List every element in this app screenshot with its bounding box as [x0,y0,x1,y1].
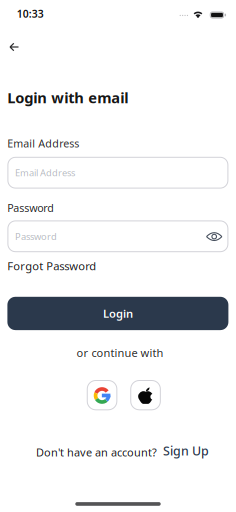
staticText: or continue with [76,345,163,360]
staticText: Login [103,306,133,321]
button[interactable]: Sign Up [163,442,209,459]
button[interactable]: Continue with Google [87,380,117,410]
button[interactable]: Login [7,297,228,330]
button[interactable]: Forgot Password [7,258,96,274]
staticText: Forgot Password [7,258,96,274]
staticText: Don't have an account? [36,445,157,460]
staticText: Email Address [15,166,75,179]
staticText: Login with email [7,88,128,107]
button[interactable]: Continue with Apple [130,380,161,410]
button[interactable]: Show password [206,230,223,243]
staticText: Sign Up [163,442,209,459]
staticText: Email Address [7,136,79,150]
staticText: Password [15,230,57,242]
staticText: Password [7,201,54,215]
staticText: 10:33 [17,7,44,21]
button[interactable]: Back [0,35,28,59]
